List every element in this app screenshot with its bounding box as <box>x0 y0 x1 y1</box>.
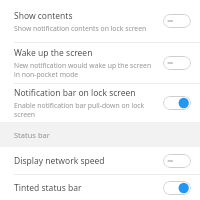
button[interactable]: Notification bar on lock screen <box>0 84 200 122</box>
button[interactable]: Display network speed <box>162 153 192 169</box>
staticText: Show notification contents on lock scree… <box>14 24 147 33</box>
staticText: Show contents <box>14 10 73 22</box>
button[interactable]: Show contents <box>162 13 192 29</box>
button[interactable]: Show contents <box>0 0 200 42</box>
button[interactable]: Wake up the screen <box>162 55 192 71</box>
button[interactable]: Wake up the screen <box>0 43 200 83</box>
button[interactable]: Notification bar on lock screen <box>162 95 192 111</box>
button[interactable]: Tinted status bar <box>162 180 192 196</box>
staticText: New notification would wake up the scree… <box>14 61 156 79</box>
staticText: Tinted status bar <box>14 182 82 194</box>
staticText: Display network speed <box>14 155 105 167</box>
staticText: Enable notification bar pull-down on loc… <box>14 101 156 119</box>
button[interactable]: Display network speed <box>0 147 200 174</box>
staticText: Wake up the screen <box>14 47 93 59</box>
staticText: Status bar <box>14 130 50 140</box>
button[interactable]: Tinted status bar <box>0 175 200 200</box>
staticText: Notification bar on lock screen <box>14 87 136 99</box>
